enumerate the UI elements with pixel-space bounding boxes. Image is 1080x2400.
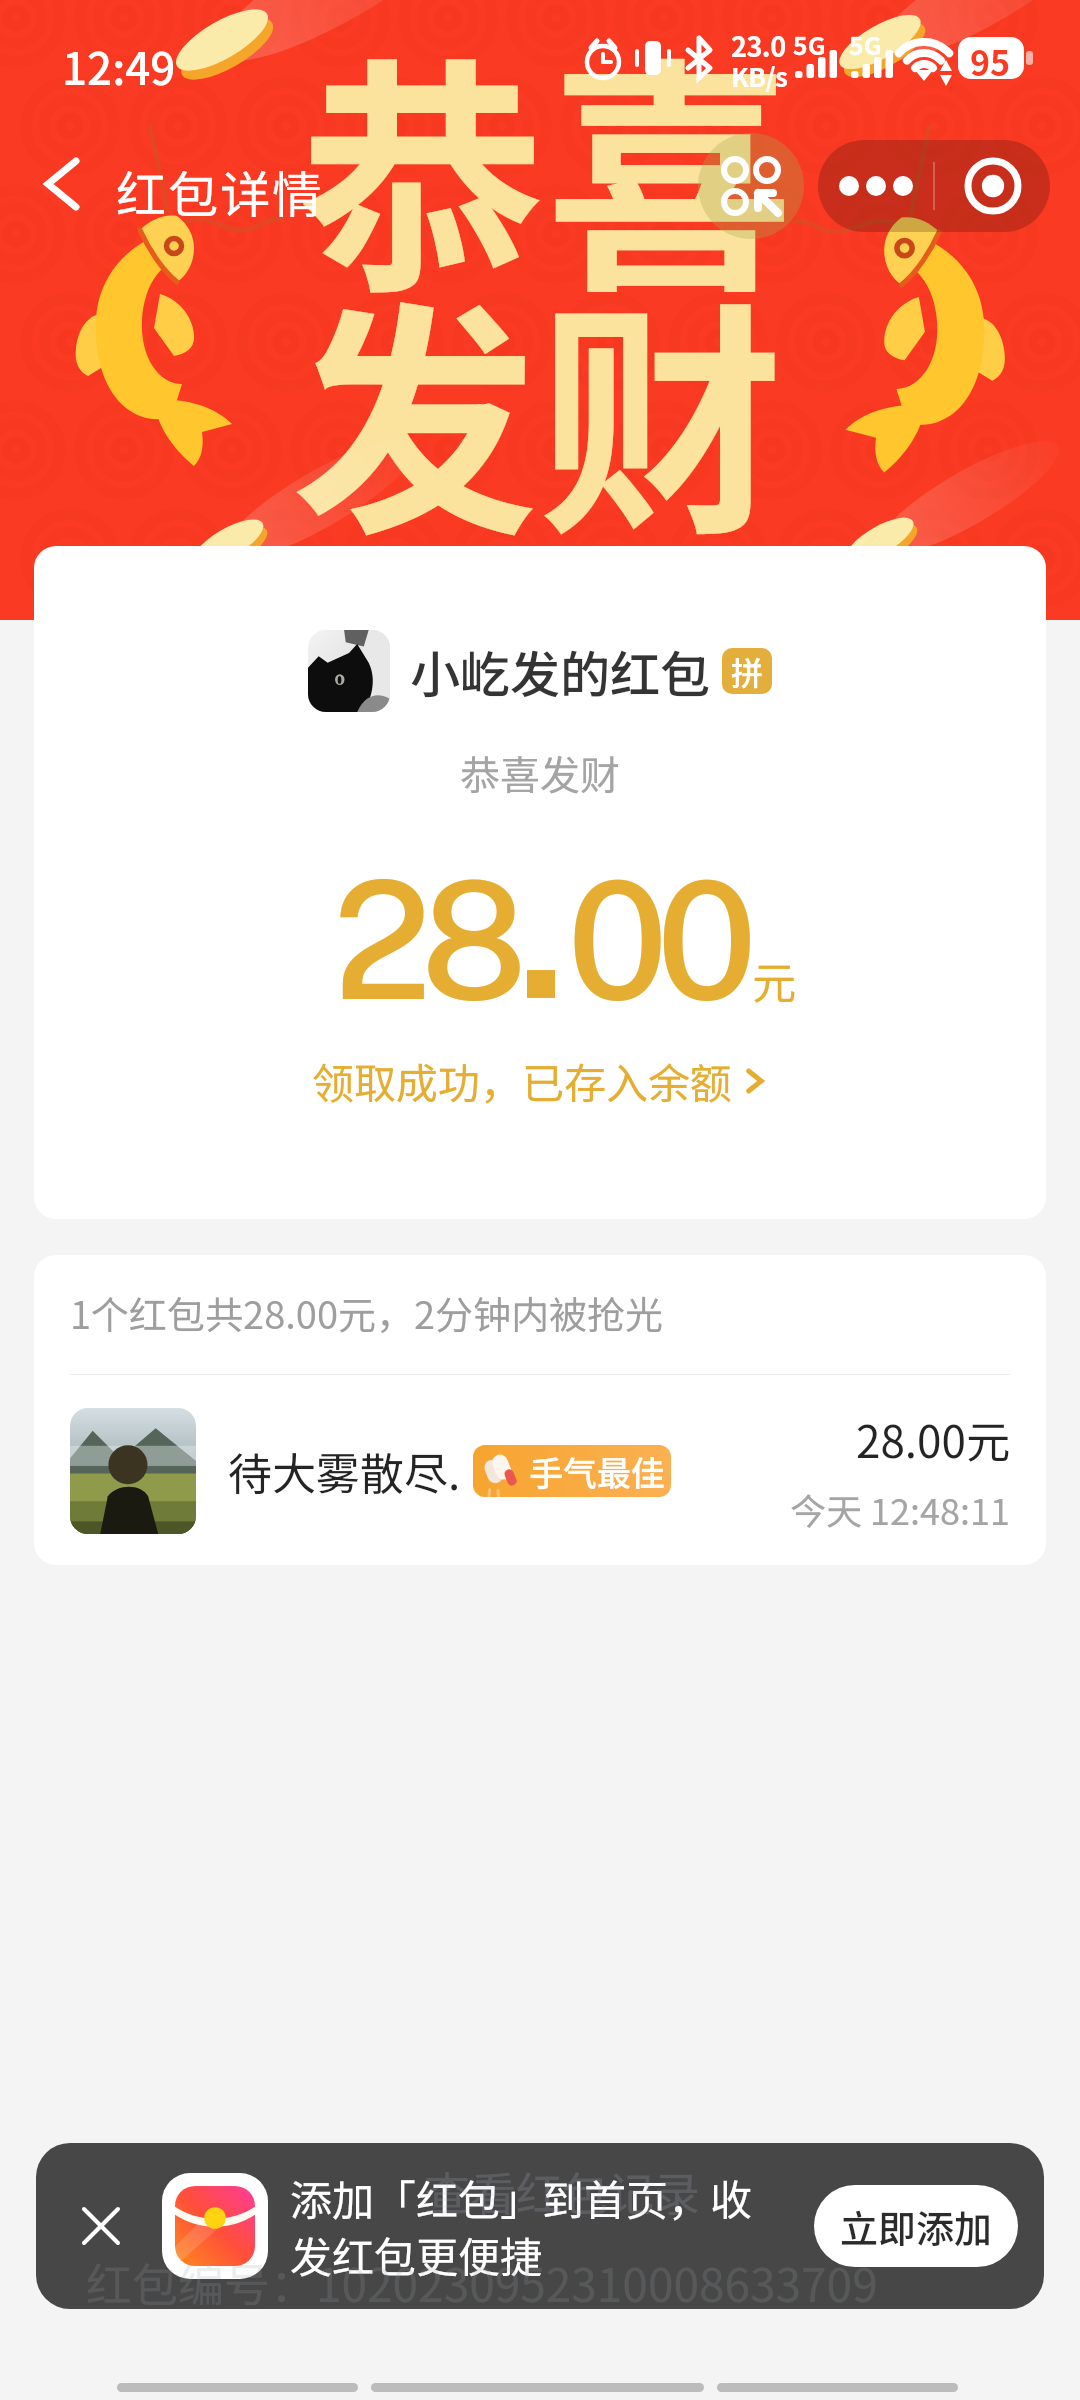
staticText: 今天 12:48:11 xyxy=(790,1483,1010,1535)
staticText: 元 xyxy=(752,948,796,1012)
staticText: 待大雾散尽. xyxy=(228,1439,461,1503)
staticText: 立即添加 xyxy=(840,2199,993,2254)
staticText: 添加「红包」到首页，收 发红包更便捷 xyxy=(290,2167,753,2286)
staticText: 1个红包共28.00元，2分钟内被抢光 xyxy=(70,1285,664,1340)
button[interactable]: Back xyxy=(14,136,110,232)
button[interactable]: Dismiss banner xyxy=(62,2187,140,2265)
staticText: 恭喜发财 xyxy=(460,744,620,802)
staticText: 12:49 xyxy=(62,34,176,98)
staticText: 恭喜 xyxy=(298,0,794,341)
button[interactable]: 待大雾散尽. xyxy=(70,1407,1010,1535)
staticText: 95 xyxy=(970,37,1011,86)
staticText: 23.0 xyxy=(731,26,786,65)
staticText: 拼 xyxy=(731,648,764,694)
staticText: 5G xyxy=(793,26,826,62)
staticText: 00 xyxy=(567,844,747,1036)
button[interactable]: More options xyxy=(818,140,933,232)
staticText: 发财 xyxy=(292,228,785,584)
button[interactable]: 领取成功，已存入余额 xyxy=(312,1050,769,1111)
staticText: 手气最佳 xyxy=(529,1447,665,1496)
button[interactable]: 立即添加 xyxy=(814,2185,1018,2267)
staticText: 领取成功，已存入余额 xyxy=(312,1050,733,1111)
button[interactable]: Scan xyxy=(698,133,804,239)
staticText: 5G xyxy=(849,26,882,62)
staticText: 红包详情 xyxy=(116,155,324,227)
button[interactable]: Close xyxy=(935,140,1050,232)
staticText: 小屹发的红包 xyxy=(410,635,710,707)
staticText: 红包编号：1020230952310008633709 xyxy=(86,2249,878,2316)
staticText: KB/s xyxy=(731,57,788,95)
staticText: 查看红包记录 xyxy=(424,2158,700,2225)
staticText: 28.00元 xyxy=(856,1407,1010,1471)
staticText: 28 xyxy=(333,844,517,1036)
